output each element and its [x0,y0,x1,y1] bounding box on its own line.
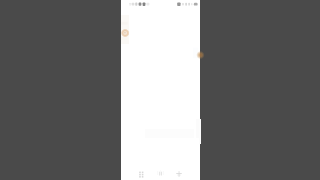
button[interactable]: Catalogue [131,167,151,180]
button[interactable]: Profile [121,28,131,38]
button[interactable]: Orders [150,167,170,180]
button[interactable]: Cart [169,167,189,180]
